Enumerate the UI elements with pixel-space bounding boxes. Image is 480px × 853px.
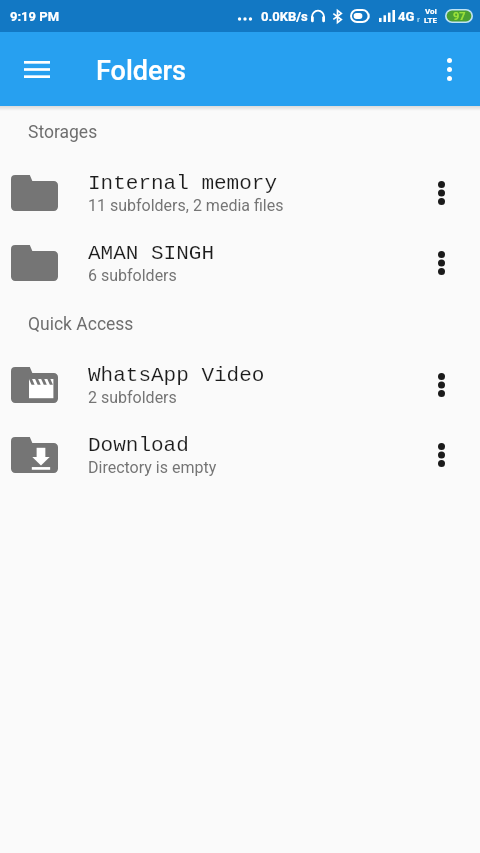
- staticText: r: [417, 15, 420, 24]
- button[interactable]: Download: [0, 420, 480, 490]
- button[interactable]: More options: [426, 46, 472, 92]
- staticText: Directory is empty: [88, 458, 217, 477]
- button[interactable]: Internal memory: [0, 158, 480, 228]
- staticText: AMAN SINGH: [88, 242, 215, 266]
- staticText: Internal memory: [88, 172, 278, 196]
- button[interactable]: Open navigation drawer: [13, 45, 61, 93]
- staticText: Storages: [28, 122, 98, 143]
- staticText: 97: [453, 10, 466, 23]
- staticText: 11 subfolders, 2 media files: [88, 196, 284, 215]
- staticText: 0.0KB/s: [261, 9, 308, 24]
- button[interactable]: More options for WhatsApp Video: [417, 361, 465, 409]
- staticText: 9:19 PM: [10, 9, 60, 24]
- button[interactable]: More options for Internal memory: [417, 169, 465, 217]
- button[interactable]: More options for AMAN SINGH: [417, 239, 465, 287]
- staticText: WhatsApp Video: [88, 364, 265, 388]
- staticText: Download: [88, 434, 189, 458]
- button[interactable]: AMAN SINGH: [0, 228, 480, 298]
- staticText: Quick Access: [28, 314, 134, 335]
- staticText: 2 subfolders: [88, 388, 177, 407]
- button[interactable]: More options for Download: [417, 431, 465, 479]
- staticText: Folders: [96, 55, 186, 87]
- staticText: VoI: [425, 7, 437, 16]
- staticText: LTE: [424, 16, 437, 25]
- staticText: 4G: [398, 9, 415, 24]
- button[interactable]: WhatsApp Video: [0, 350, 480, 420]
- staticText: 6 subfolders: [88, 266, 177, 285]
